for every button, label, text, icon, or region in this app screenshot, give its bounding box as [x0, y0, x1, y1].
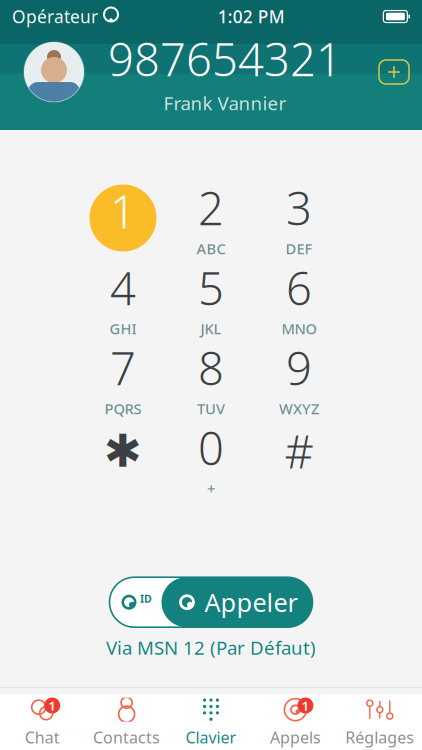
button[interactable]: Réglages: [338, 692, 422, 750]
button[interactable]: 9: [255, 342, 343, 414]
button[interactable]: 1: [79, 182, 167, 254]
staticText: Appels: [270, 727, 321, 748]
staticText: Réglages: [345, 727, 414, 748]
staticText: 6: [286, 258, 312, 318]
button[interactable]: 4: [79, 262, 167, 334]
staticText: PQRS: [104, 399, 141, 418]
button[interactable]: Contacts: [84, 692, 169, 750]
button[interactable]: Clavier: [169, 692, 253, 750]
staticText: Appeler: [204, 585, 297, 619]
staticText: Frank Vannier: [163, 91, 286, 115]
staticText: Frank Vannier: [163, 91, 286, 115]
button[interactable]: 5: [167, 262, 255, 334]
button[interactable]: 0: [167, 422, 255, 494]
staticText: Opérateur: [12, 5, 98, 28]
staticText: Via MSN 12 (Par Défaut): [106, 635, 316, 660]
staticText: 1:02 PM: [218, 5, 285, 28]
button[interactable]: Supprimer: [366, 44, 422, 100]
staticText: 1:02 PM: [218, 5, 285, 28]
staticText: #: [284, 421, 313, 481]
button[interactable]: Supprimer: [366, 44, 422, 100]
button[interactable]: #: [255, 422, 343, 494]
button[interactable]: ID: [109, 577, 312, 627]
staticText: WXYZ: [279, 399, 319, 418]
staticText: 1: [110, 181, 136, 241]
staticText: 3: [286, 178, 312, 238]
staticText: ABC: [196, 239, 225, 258]
staticText: ID: [140, 592, 152, 606]
staticText: Contacts: [93, 727, 160, 748]
staticText: 1: [301, 697, 309, 714]
staticText: JKL: [200, 319, 221, 338]
staticText: Clavier: [185, 727, 236, 748]
staticText: 7: [110, 338, 136, 398]
button[interactable]: 1: [253, 692, 338, 750]
staticText: MNO: [281, 319, 316, 338]
button[interactable]: 3: [255, 182, 343, 254]
button[interactable]: 6: [255, 262, 343, 334]
staticText: GHI: [109, 319, 136, 338]
staticText: 1: [48, 697, 56, 714]
staticText: +: [207, 479, 215, 498]
staticText: 4: [110, 258, 136, 318]
staticText: ✱: [104, 425, 142, 477]
staticText: 2: [198, 178, 224, 238]
button[interactable]: 2: [167, 182, 255, 254]
staticText: 9: [286, 338, 312, 398]
staticText: DEF: [285, 239, 312, 258]
staticText: 8: [198, 338, 224, 398]
staticText: 987654321: [108, 28, 342, 89]
staticText: 5: [198, 258, 224, 318]
button[interactable]: ✱: [79, 422, 167, 494]
staticText: TUV: [197, 399, 225, 418]
button[interactable]: 1: [0, 692, 84, 750]
staticText: Opérateur: [12, 5, 98, 28]
staticText: 987654321: [108, 28, 342, 89]
button[interactable]: 8: [167, 342, 255, 414]
staticText: 0: [198, 418, 224, 478]
staticText: Chat: [25, 727, 60, 748]
button[interactable]: 7: [79, 342, 167, 414]
